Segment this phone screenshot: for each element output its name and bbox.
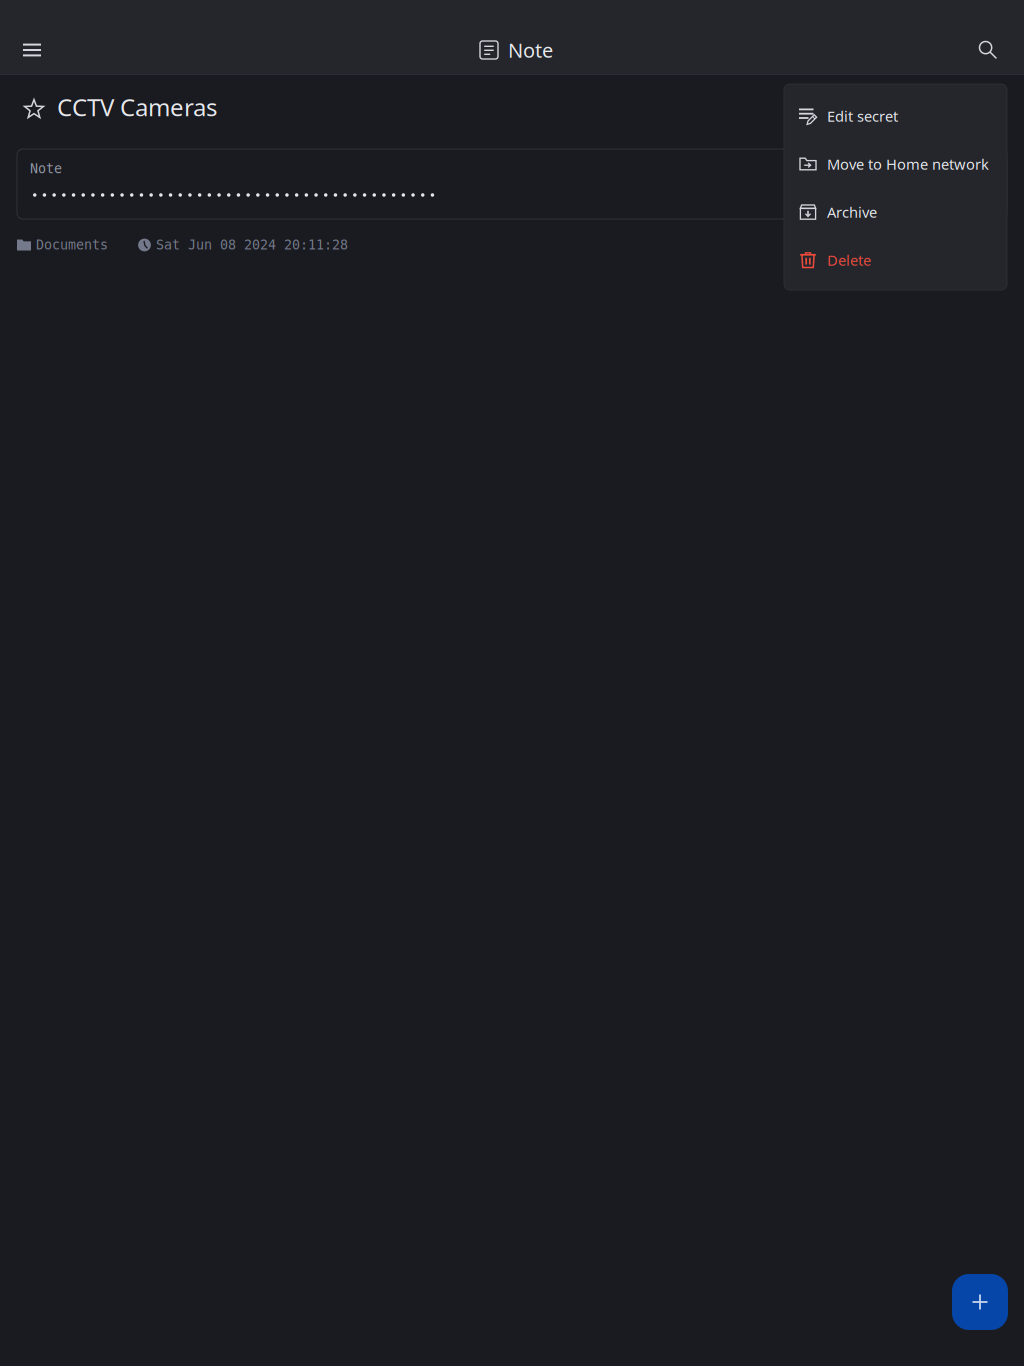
staticText: Documents (36, 237, 108, 252)
button[interactable]: Menu (8, 26, 56, 74)
staticText: Note (508, 37, 553, 63)
staticText: Sat Jun 08 2024 20:11:28 (156, 237, 348, 252)
button[interactable]: Search (964, 26, 1012, 74)
button[interactable]: Note (17, 149, 1007, 219)
staticText: Move to Home network (827, 154, 989, 174)
staticText: Note (30, 161, 62, 176)
button[interactable]: Add (952, 1274, 1008, 1330)
staticText: Archive (827, 202, 877, 222)
button[interactable]: Move to Home network (784, 140, 1007, 188)
button[interactable]: Favourite (12, 88, 56, 132)
staticText: Edit secret (827, 106, 898, 126)
button[interactable]: Edit secret (784, 92, 1007, 140)
staticText: CCTV Cameras (57, 91, 217, 123)
staticText: Delete (827, 250, 871, 270)
button[interactable]: Archive (784, 188, 1007, 236)
button[interactable]: Delete (784, 236, 1007, 284)
